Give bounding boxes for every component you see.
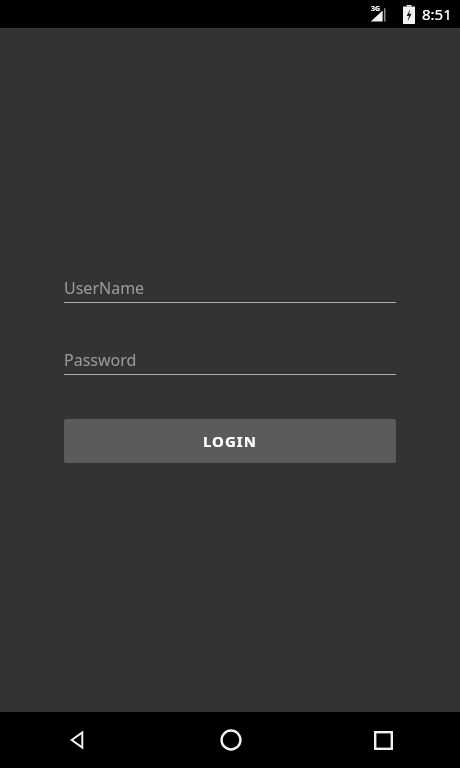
button[interactable]: UserName bbox=[64, 274, 396, 303]
button[interactable]: Back bbox=[0, 712, 154, 768]
staticText: UserName bbox=[64, 277, 145, 299]
button[interactable]: LOGIN bbox=[64, 419, 396, 463]
button[interactable]: Recent apps bbox=[307, 712, 460, 768]
button[interactable]: Password bbox=[64, 346, 396, 375]
staticText: LOGIN bbox=[203, 431, 257, 451]
button[interactable]: Home bbox=[154, 712, 307, 768]
staticText: 3G bbox=[371, 4, 381, 14]
staticText: 8:51 bbox=[422, 4, 452, 24]
staticText: Password bbox=[64, 349, 137, 371]
